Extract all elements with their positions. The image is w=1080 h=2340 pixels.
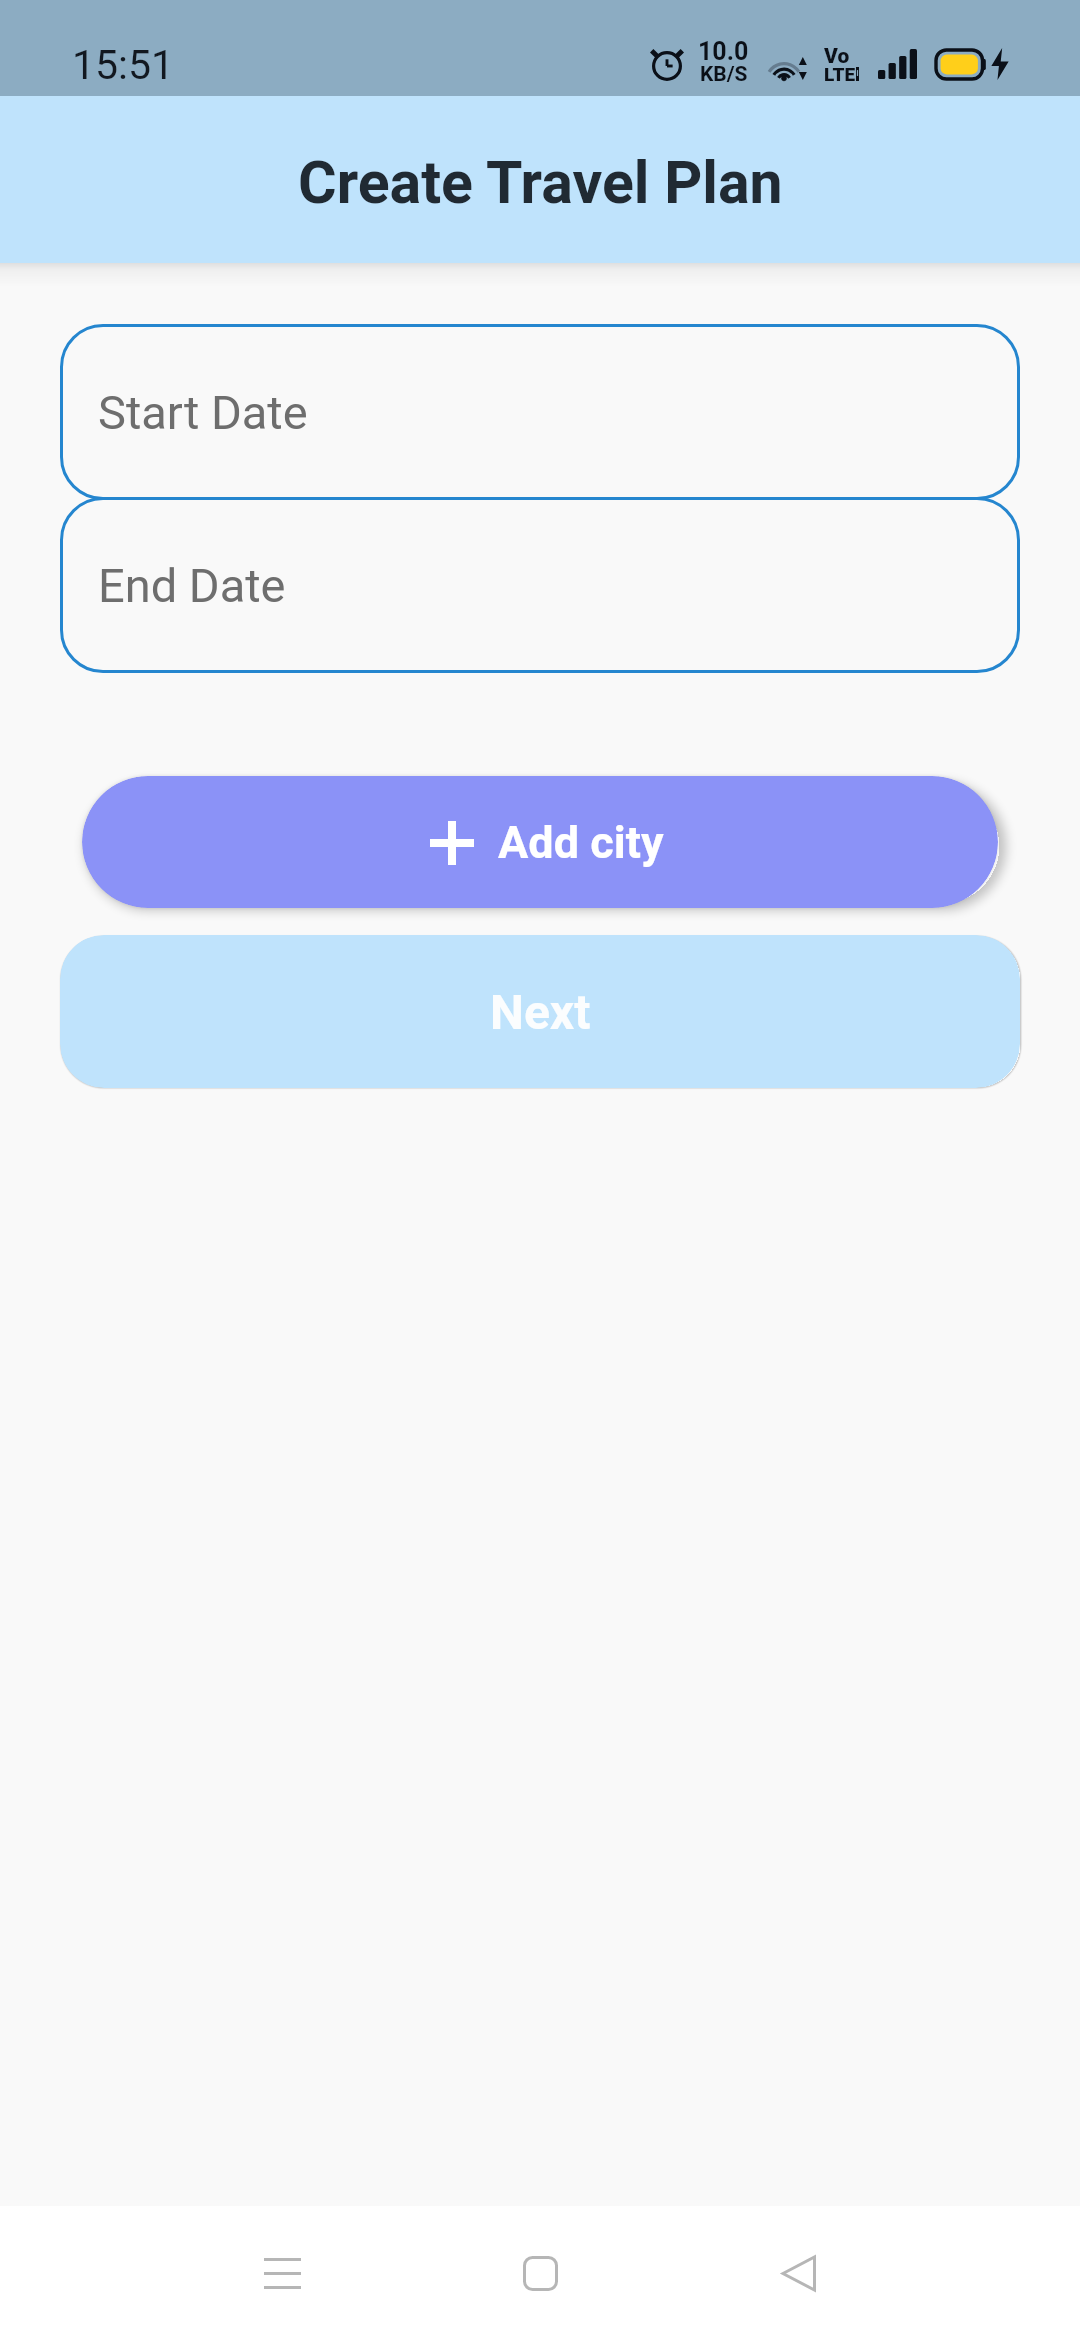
staticText: 10.0 — [698, 37, 749, 66]
button[interactable]: Recent apps — [217, 2208, 347, 2338]
button[interactable]: Add city — [82, 776, 998, 908]
staticText: Next — [490, 984, 591, 1040]
button[interactable]: End Date — [60, 497, 1020, 673]
staticText: LTE — [824, 63, 856, 85]
button[interactable]: Start Date — [60, 324, 1020, 500]
button[interactable]: Next — [60, 935, 1020, 1088]
staticText: End Date — [98, 558, 286, 613]
button[interactable]: Home — [475, 2208, 605, 2338]
staticText: Add city — [498, 816, 664, 869]
staticText: KB/S — [700, 62, 748, 87]
staticText: Create Travel Plan — [298, 148, 783, 217]
staticText: Vo — [824, 44, 850, 69]
staticText: Start Date — [98, 385, 308, 440]
button[interactable]: Back — [733, 2208, 863, 2338]
staticText: 15:51 — [72, 41, 175, 89]
